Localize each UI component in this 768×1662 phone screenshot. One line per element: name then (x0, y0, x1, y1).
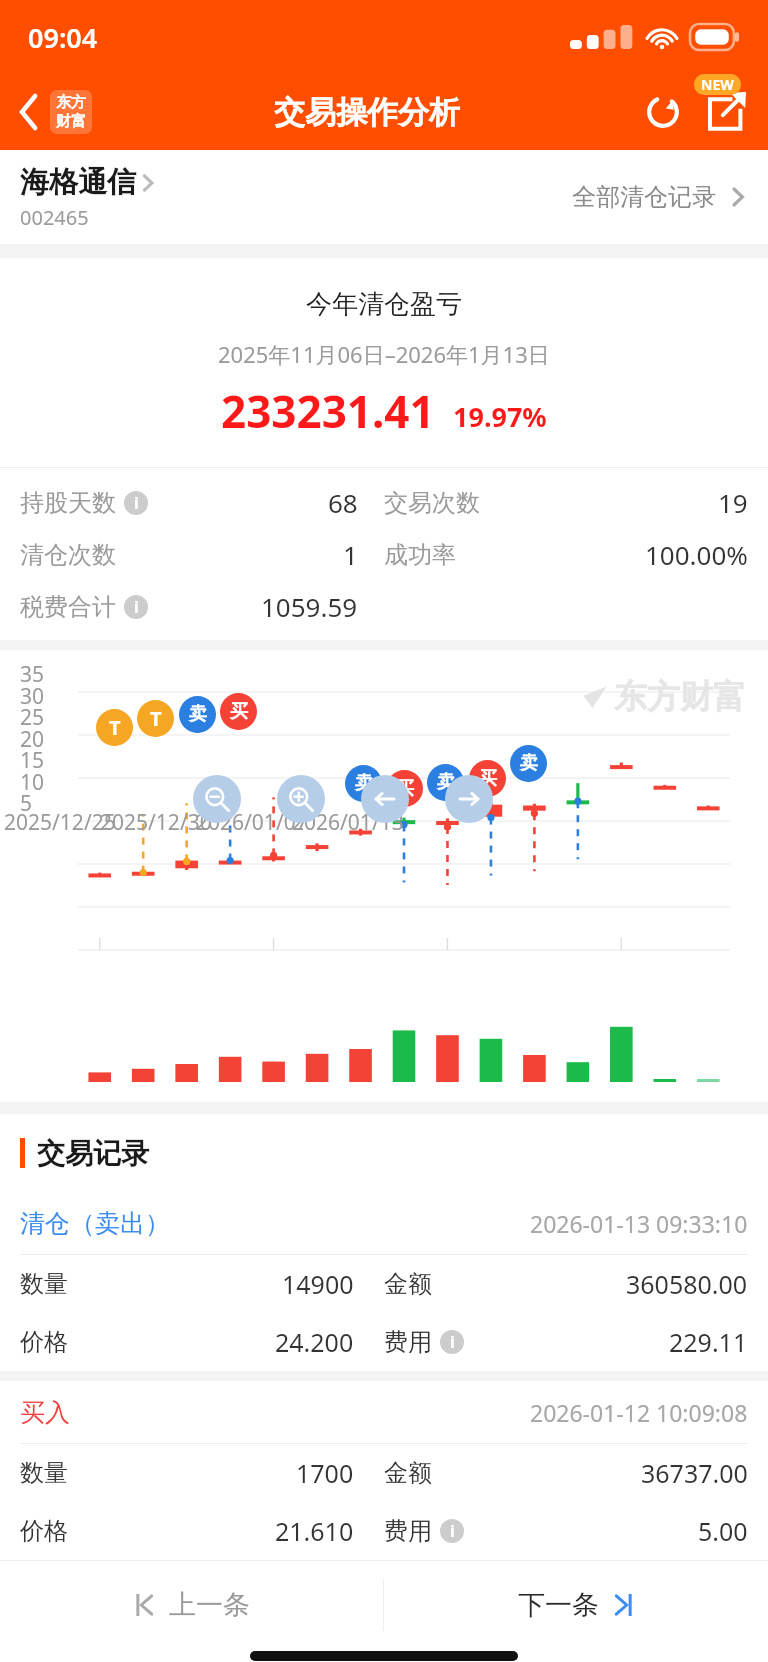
staticText: 交易记录 (37, 1136, 149, 1171)
staticText: 卖 (520, 752, 538, 775)
staticText: 5 (20, 789, 33, 818)
staticText: 1 (343, 537, 358, 572)
staticText: 海格通信 (20, 164, 136, 201)
staticText: 金额 (384, 1269, 432, 1299)
staticText: 19 (718, 485, 748, 520)
button[interactable]: 右移 (445, 775, 493, 823)
staticText: 25 (20, 703, 45, 732)
staticText: T (150, 705, 162, 732)
staticText: 买 (479, 767, 497, 790)
button[interactable]: 海格通信 (0, 150, 768, 244)
staticText: 数量 (20, 1269, 68, 1299)
staticText: i (450, 1520, 455, 1542)
staticText: NEW (701, 75, 734, 94)
staticText: 卖 (189, 703, 207, 726)
staticText: 1700 (296, 1456, 354, 1490)
staticText: 费用 (384, 1516, 432, 1546)
staticText: 10 (20, 768, 45, 797)
staticText: 233231.41 (221, 381, 435, 441)
staticText: 下一条 (518, 1588, 599, 1622)
staticText: 清仓（卖出） (20, 1208, 170, 1239)
staticText: 数量 (20, 1458, 68, 1488)
staticText: 持股天数 (20, 488, 116, 518)
staticText: 2025/12/30 (100, 808, 212, 837)
button[interactable]: 返回 东方财富 (0, 90, 100, 134)
staticText: 2026/01/13 (292, 808, 404, 837)
staticText: 费用 (384, 1327, 432, 1357)
staticText: i (450, 1331, 455, 1353)
staticText: 税费合计 (20, 592, 116, 622)
staticText: 清仓次数 (20, 540, 116, 570)
staticText: 19.97% (453, 398, 547, 435)
staticText: 全部清仓记录 (572, 182, 716, 212)
staticText: 5.00 (698, 1514, 748, 1548)
staticText: 金额 (384, 1458, 432, 1488)
staticText: 36737.00 (641, 1456, 748, 1490)
staticText: 20 (20, 725, 45, 754)
button[interactable]: 清仓（卖出） (0, 1192, 768, 1371)
button[interactable]: 买入 (0, 1381, 768, 1560)
staticText: 2026-01-12 10:09:08 (530, 1397, 748, 1428)
button[interactable]: 全部清仓记录 (572, 182, 748, 212)
staticText: 财富 (56, 112, 86, 131)
button[interactable]: 分享 (692, 78, 760, 146)
staticText: i (134, 492, 139, 514)
staticText: 30 (20, 682, 45, 711)
staticText: 今年清仓盈亏 (306, 288, 462, 321)
button[interactable]: 下一条 (384, 1561, 768, 1649)
staticText: 卖 (355, 772, 373, 795)
staticText: 买入 (20, 1397, 70, 1428)
staticText: 14900 (282, 1267, 354, 1301)
staticText: 上一条 (169, 1588, 250, 1622)
staticText: T (109, 714, 121, 741)
staticText: 交易次数 (384, 488, 480, 518)
staticText: 2026/01/07 (196, 808, 308, 837)
button[interactable]: 上一条 (0, 1561, 383, 1649)
staticText: 360580.00 (626, 1267, 748, 1301)
staticText: 1059.59 (261, 589, 358, 624)
staticText: 价格 (20, 1327, 68, 1357)
staticText: 229.11 (669, 1325, 748, 1359)
staticText: 2026-01-13 09:33:10 (530, 1208, 748, 1239)
staticText: 东方财富 (614, 676, 746, 718)
button[interactable]: 刷新 (634, 83, 692, 141)
staticText: 002465 (20, 204, 89, 231)
staticText: 成功率 (384, 540, 456, 570)
staticText: 买 (396, 777, 414, 800)
staticText: 15 (20, 746, 45, 775)
staticText: 卖 (437, 771, 455, 794)
staticText: 价格 (20, 1516, 68, 1546)
staticText: 09:04 (28, 19, 98, 56)
staticText: 68 (328, 485, 358, 520)
button[interactable]: 左移 (361, 775, 409, 823)
staticText: 买 (230, 700, 248, 723)
staticText: 24.200 (275, 1325, 354, 1359)
staticText: 2025年11月06日–2026年1月13日 (218, 339, 550, 369)
staticText: 35 (20, 660, 45, 689)
staticText: 100.00% (645, 537, 748, 572)
staticText: 东方 (56, 93, 86, 112)
staticText: 2025/12/25 (4, 808, 116, 837)
button[interactable]: 缩小 (193, 775, 241, 823)
button[interactable]: 放大 (277, 775, 325, 823)
staticText: i (134, 596, 139, 618)
staticText: 交易操作分析 (274, 93, 460, 132)
staticText: 21.610 (275, 1514, 354, 1548)
